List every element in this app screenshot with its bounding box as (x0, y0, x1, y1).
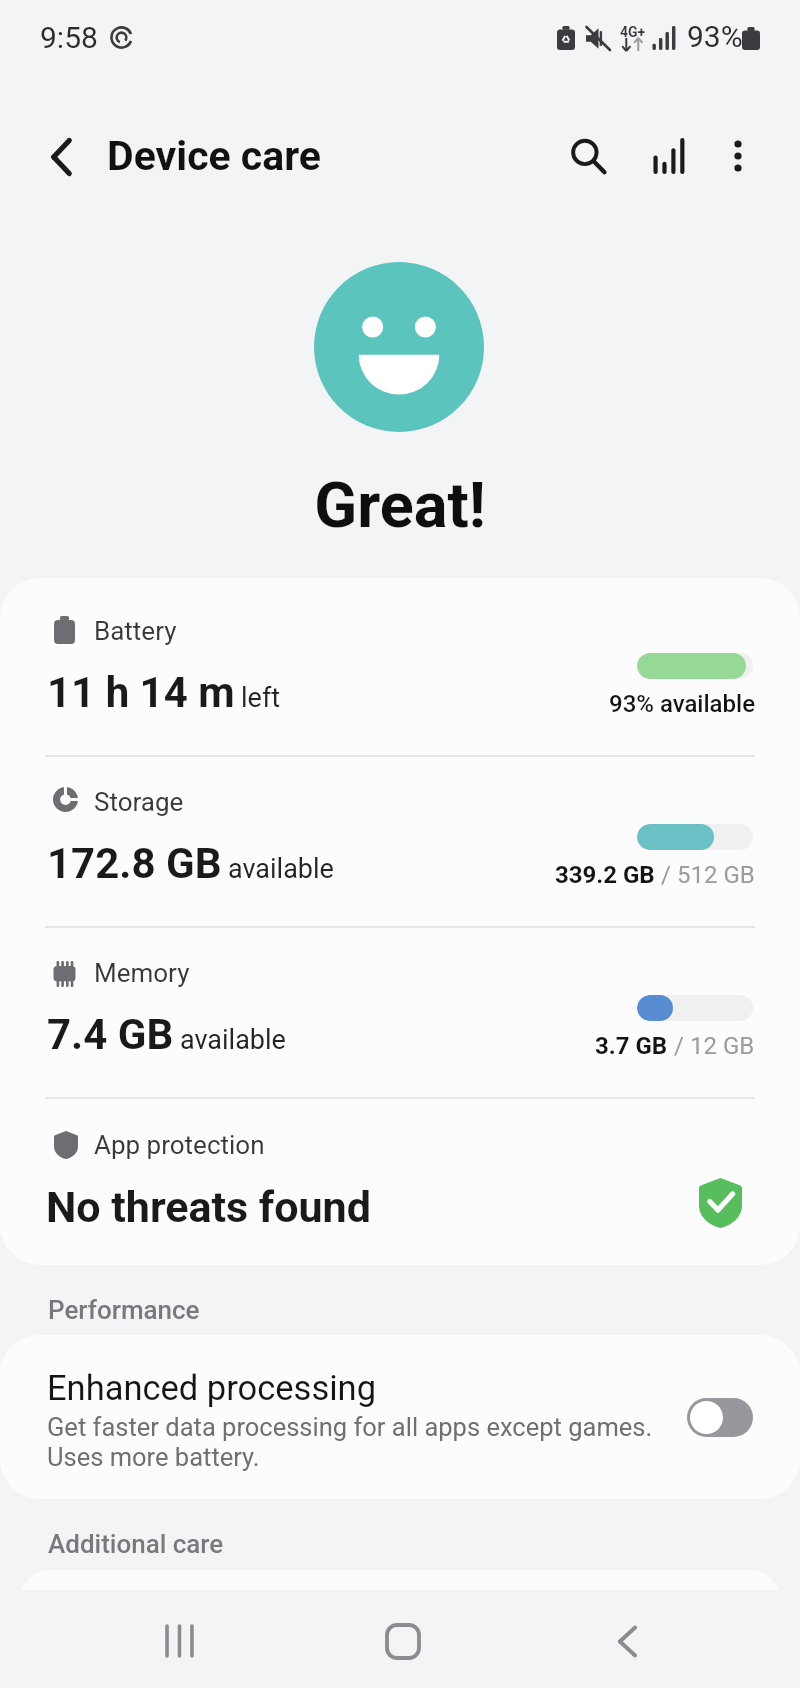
button[interactable]: More options (704, 123, 770, 189)
button[interactable]: App protection (0, 1091, 800, 1265)
staticText: Additional care (48, 1529, 224, 1559)
staticText: Device care (107, 132, 321, 180)
button[interactable]: Back (582, 1596, 672, 1686)
staticText: 9:58 (40, 20, 98, 55)
staticText: Great! (0, 469, 800, 543)
button[interactable]: Home (358, 1596, 448, 1686)
staticText: 3.7 GB (595, 1032, 668, 1060)
button[interactable]: Enhanced processing toggle (687, 1398, 753, 1437)
staticText: 7.4 GB (47, 1010, 174, 1059)
button[interactable]: Battery (0, 578, 800, 749)
button[interactable]: Usage statistics (635, 121, 701, 187)
button[interactable]: Memory (0, 920, 800, 1091)
button[interactable]: Back (30, 124, 96, 190)
staticText: App protection (94, 1130, 265, 1160)
staticText: 172.8 GB (47, 839, 222, 888)
staticText: Battery (94, 616, 177, 646)
button[interactable] (20, 1570, 780, 1630)
staticText: left (241, 682, 281, 714)
staticText: 11 h 14 m (47, 668, 235, 717)
staticText: Performance (48, 1295, 200, 1325)
staticText: Memory (94, 958, 190, 988)
button[interactable]: Recent apps (134, 1596, 224, 1686)
staticText: Storage (94, 787, 184, 817)
staticText: 93% (687, 19, 743, 54)
staticText: 339.2 GB (555, 861, 655, 889)
staticText: available (228, 853, 334, 885)
staticText: 4G+ (620, 24, 646, 40)
staticText: / (655, 861, 677, 889)
button[interactable]: Storage (0, 749, 800, 920)
staticText: Enhanced processing (47, 1368, 377, 1408)
staticText: available (180, 1024, 286, 1056)
staticText: 93% available (609, 690, 755, 718)
button[interactable]: Enhanced processing (0, 1335, 800, 1499)
button[interactable]: Search (556, 124, 622, 190)
staticText: No threats found (46, 1182, 371, 1232)
staticText: / (668, 1032, 690, 1060)
staticText: 512 GB (677, 861, 755, 889)
staticText: Get faster data processing for all apps … (47, 1412, 653, 1472)
staticText: 12 GB (690, 1032, 755, 1060)
